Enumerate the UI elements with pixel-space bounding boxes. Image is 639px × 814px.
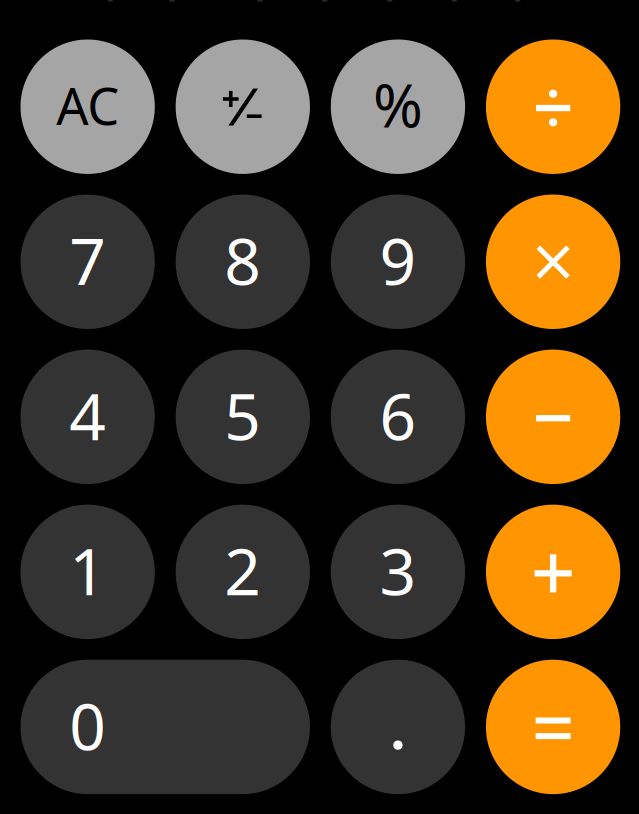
staticText: 2 (224, 528, 261, 613)
button[interactable]: Plus (486, 505, 620, 639)
button[interactable]: Multiply (486, 194, 620, 329)
button[interactable]: Divide (486, 39, 620, 174)
button[interactable]: 0 (20, 660, 310, 794)
button[interactable]: 6 (331, 350, 465, 484)
staticText: 0 (69, 683, 106, 768)
button[interactable]: 7 (20, 194, 155, 329)
staticText: 9 (379, 218, 416, 303)
staticText: AC (56, 72, 119, 139)
staticText: 3 (379, 528, 416, 613)
button[interactable]: AC (20, 39, 155, 174)
staticText: 8 (224, 218, 261, 303)
staticText: 6 (379, 373, 416, 458)
staticText: 4 (69, 373, 106, 458)
staticText: 5 (224, 373, 261, 458)
button[interactable]: 8 (176, 194, 310, 329)
button[interactable]: 1 (20, 505, 155, 639)
staticText: 7 (69, 218, 106, 303)
button[interactable]: 3 (331, 505, 465, 639)
button[interactable]: % (331, 39, 465, 174)
button[interactable]: 9 (331, 194, 465, 329)
button[interactable]: 4 (20, 350, 155, 484)
button[interactable]: 2 (176, 505, 310, 639)
button[interactable]: Equals (486, 660, 620, 794)
button[interactable]: 5 (176, 350, 310, 484)
button[interactable]: Plus minus (176, 39, 310, 174)
staticText: 1 (69, 528, 106, 613)
button[interactable]: Decimal point (331, 660, 465, 794)
staticText: % (373, 64, 423, 144)
button[interactable]: Minus (486, 350, 620, 484)
